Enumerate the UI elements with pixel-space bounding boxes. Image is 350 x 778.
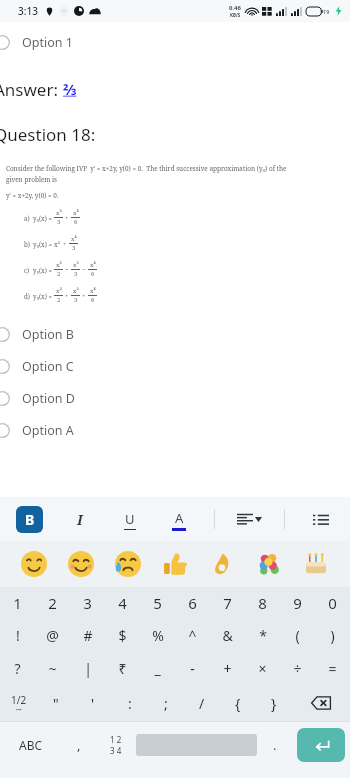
button[interactable]: Underline — [116, 506, 143, 533]
button[interactable]: Emoji — [68, 551, 94, 577]
staticText: × — [258, 659, 267, 678]
button[interactable]: ' — [74, 685, 111, 721]
staticText: ( — [295, 626, 300, 645]
staticText: 5 — [153, 593, 162, 613]
staticText: _ — [154, 659, 161, 678]
staticText: ABC — [19, 737, 43, 753]
button[interactable]: # — [70, 619, 105, 652]
button[interactable]: % — [140, 619, 175, 652]
staticText: y₃(x) = — [33, 292, 52, 300]
button[interactable]: $ — [105, 619, 140, 652]
button[interactable]: ! — [0, 619, 35, 652]
staticText: Option 1 — [22, 34, 73, 51]
button[interactable]: ₹ — [105, 652, 140, 685]
button[interactable]: 4 — [105, 587, 140, 619]
button[interactable]: ÷ — [280, 652, 315, 685]
button[interactable]: OK hand — [209, 551, 235, 577]
staticText: d) — [24, 292, 30, 300]
button[interactable]: ~ — [35, 652, 70, 685]
button[interactable]: 5 — [140, 587, 175, 619]
staticText: ^ — [188, 626, 197, 645]
staticText: Option A — [22, 422, 74, 439]
staticText: 3 — [72, 244, 76, 252]
staticText: − — [65, 266, 69, 274]
button[interactable]: Enter — [297, 728, 345, 762]
button[interactable]: 2 — [35, 587, 70, 619]
staticText: b) — [24, 240, 30, 248]
button[interactable]: + — [210, 652, 245, 685]
button[interactable]: Switch symbols page — [0, 685, 37, 721]
button[interactable]: Emoji — [115, 551, 141, 577]
staticText: c) — [24, 266, 30, 274]
button[interactable]: = — [315, 652, 350, 685]
staticText: x⁴ — [90, 287, 96, 295]
staticText: ) — [330, 626, 335, 645]
staticText: - — [190, 659, 195, 678]
staticText: % — [152, 626, 164, 645]
button[interactable]: Emoji — [21, 551, 47, 577]
button[interactable]: 9 — [280, 587, 315, 619]
button[interactable]: _ — [140, 652, 175, 685]
button[interactable]: @ — [35, 619, 70, 652]
staticText: $ — [118, 626, 127, 645]
button[interactable]: Bouquet — [256, 551, 282, 577]
staticText: 6 — [74, 218, 78, 226]
button[interactable]: Cake — [303, 551, 329, 577]
button[interactable]: Bold — [16, 506, 43, 533]
button[interactable]: * — [245, 619, 280, 652]
button[interactable]: ( — [280, 619, 315, 652]
button[interactable]: 0 — [315, 587, 350, 619]
staticText: Consider the following IVP y′ = x+2y, y(… — [6, 164, 287, 173]
button[interactable]: Option B — [0, 318, 350, 350]
button[interactable]: Number pad — [96, 722, 136, 768]
button[interactable]: Option C — [0, 350, 350, 382]
button[interactable]: Text color — [165, 506, 192, 533]
button[interactable]: & — [210, 619, 245, 652]
staticText: ÷ — [293, 659, 302, 678]
staticText: y′ = x+2y, y(0) = 0. — [6, 191, 59, 200]
button[interactable]: } — [256, 685, 292, 721]
button[interactable]: ABC — [0, 722, 61, 768]
button[interactable]: Option 1 — [0, 26, 350, 58]
staticText: 3:13 — [18, 4, 38, 18]
button[interactable]: Bullet list — [307, 506, 334, 533]
staticText: " — [53, 694, 59, 713]
button[interactable]: ; — [148, 685, 184, 721]
button[interactable]: ? — [0, 652, 35, 685]
button[interactable]: 1 — [0, 587, 35, 619]
staticText: ~ — [48, 659, 57, 678]
button[interactable]: 7 — [210, 587, 245, 619]
staticText: x³ — [73, 287, 79, 295]
staticText: @ — [46, 626, 59, 645]
button[interactable]: 3 — [70, 587, 105, 619]
staticText: 3 — [57, 218, 61, 226]
button[interactable]: " — [37, 685, 74, 721]
button[interactable]: , — [61, 722, 96, 768]
button[interactable]: . — [257, 722, 292, 768]
button[interactable]: ) — [315, 619, 350, 652]
staticText: + — [82, 292, 86, 300]
button[interactable]: / — [184, 685, 220, 721]
button[interactable]: - — [175, 652, 210, 685]
staticText: x² — [54, 240, 61, 248]
button[interactable]: ^ — [175, 619, 210, 652]
staticText: # — [83, 626, 93, 645]
staticText: | — [84, 659, 92, 678]
button[interactable]: Option A — [0, 414, 350, 446]
button[interactable]: { — [220, 685, 256, 721]
staticText: { — [235, 694, 241, 713]
button[interactable]: Alignment — [237, 513, 262, 526]
button[interactable]: : — [111, 685, 148, 721]
button[interactable]: Thumbs up — [162, 551, 188, 577]
button[interactable]: Option D — [0, 382, 350, 414]
button[interactable]: | — [70, 652, 105, 685]
button[interactable]: 8 — [245, 587, 280, 619]
button[interactable]: 6 — [175, 587, 210, 619]
button[interactable]: × — [245, 652, 280, 685]
staticText: 3 — [74, 296, 78, 304]
button[interactable]: Backspace — [292, 685, 350, 721]
button[interactable]: Italic — [66, 506, 93, 533]
staticText: Option D — [22, 390, 75, 407]
staticText: 1 — [13, 593, 22, 613]
